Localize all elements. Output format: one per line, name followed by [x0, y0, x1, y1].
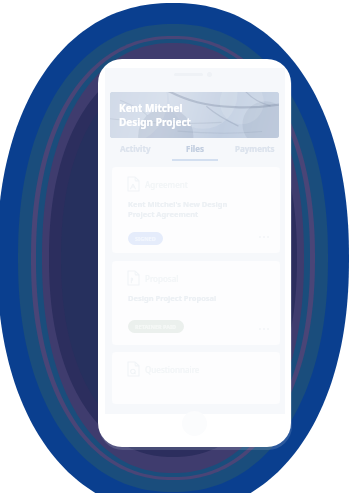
button[interactable]: Files: [165, 143, 225, 167]
button[interactable]: RETAINER PAID: [128, 320, 184, 333]
staticText: Design Project: [119, 115, 191, 129]
staticText: Activity: [120, 143, 151, 154]
staticText: Files: [186, 143, 204, 154]
button[interactable]: Payments: [225, 143, 285, 167]
button[interactable]: Proposal: [112, 261, 280, 345]
button[interactable]: SIGNED: [128, 232, 163, 245]
staticText: Design Project Proposal: [128, 293, 217, 303]
staticText: Kent Mitchel's New Design Project Agreem…: [128, 199, 228, 219]
staticText: Kent Mitchel: [119, 101, 183, 115]
button[interactable]: Activity: [105, 143, 165, 167]
button[interactable]: Agreement: [112, 167, 280, 253]
staticText: RETAINER PAID: [135, 323, 177, 330]
staticText: Proposal: [145, 273, 179, 284]
staticText: Payments: [235, 143, 275, 154]
staticText: SIGNED: [135, 235, 156, 242]
staticText: Questionnaire: [145, 364, 200, 375]
staticText: Agreement: [145, 179, 188, 190]
